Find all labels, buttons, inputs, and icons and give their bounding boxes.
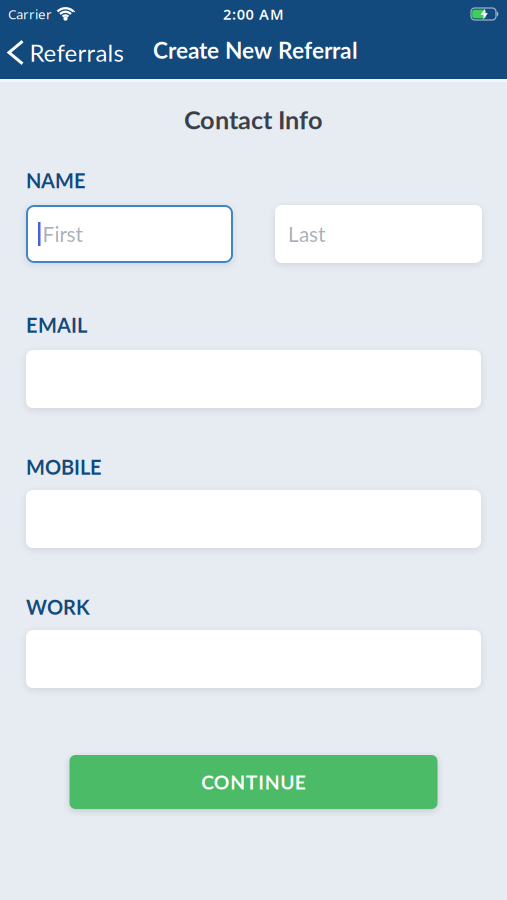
- staticText: 2:00 AM: [223, 4, 284, 24]
- staticText: MOBILE: [26, 455, 102, 479]
- button[interactable]: Back to Referrals: [0, 39, 123, 68]
- button[interactable]: Last name: [275, 205, 482, 263]
- staticText: NAME: [26, 168, 86, 192]
- staticText: Carrier: [8, 5, 52, 23]
- button[interactable]: CONTINUE: [69, 755, 437, 809]
- staticText: Contact Info: [184, 104, 323, 135]
- staticText: Last: [288, 222, 325, 246]
- staticText: WORK: [26, 595, 90, 619]
- staticText: First: [42, 222, 82, 246]
- staticText: EMAIL: [26, 313, 87, 337]
- staticText: Create New Referral: [153, 36, 358, 64]
- button[interactable]: First name: [26, 205, 233, 263]
- staticText: Referrals: [29, 38, 123, 67]
- staticText: CONTINUE: [201, 770, 306, 794]
